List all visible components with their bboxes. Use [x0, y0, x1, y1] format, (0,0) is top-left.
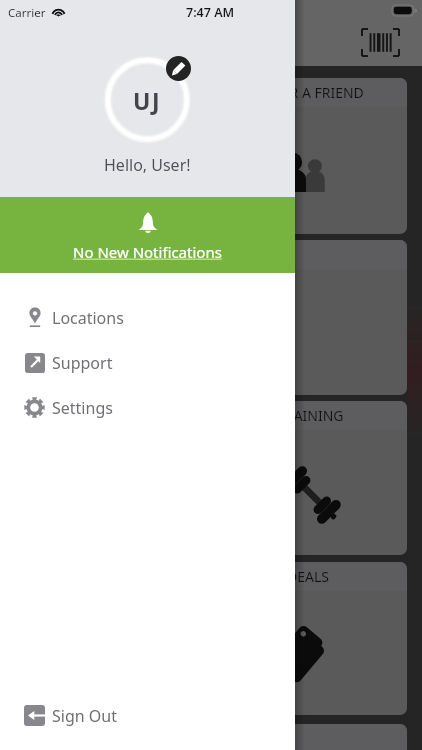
- button[interactable]: DEALS: [15, 562, 407, 715]
- button[interactable]: REFER A FRIEND: [15, 78, 407, 234]
- staticText: Hello, User!: [104, 154, 191, 176]
- staticText: Carrier: [8, 5, 46, 21]
- button[interactable]: No New Notifications: [0, 197, 295, 273]
- staticText: DEALS: [287, 567, 329, 586]
- button[interactable]: Locations: [0, 295, 295, 340]
- button[interactable]: Settings: [0, 385, 295, 430]
- staticText: REFER A FRIEND: [258, 83, 364, 102]
- button[interactable]: Sign Out: [0, 693, 295, 738]
- staticText: PERSONAL TRAINING: [203, 406, 344, 425]
- button[interactable]: [15, 724, 407, 750]
- button[interactable]: [15, 240, 407, 395]
- staticText: Support: [52, 352, 113, 374]
- button[interactable]: Edit profile: [166, 56, 191, 81]
- staticText: 7:47 AM: [186, 4, 235, 21]
- button[interactable]: Support: [0, 340, 295, 385]
- staticText: Settings: [52, 397, 113, 419]
- button[interactable]: Scan: [361, 28, 400, 57]
- staticText: UJ: [133, 85, 162, 116]
- staticText: Sign Out: [52, 705, 117, 727]
- staticText: No New Notifications: [73, 242, 222, 262]
- staticText: Locations: [52, 307, 124, 329]
- button[interactable]: PERSONAL TRAINING: [15, 401, 407, 555]
